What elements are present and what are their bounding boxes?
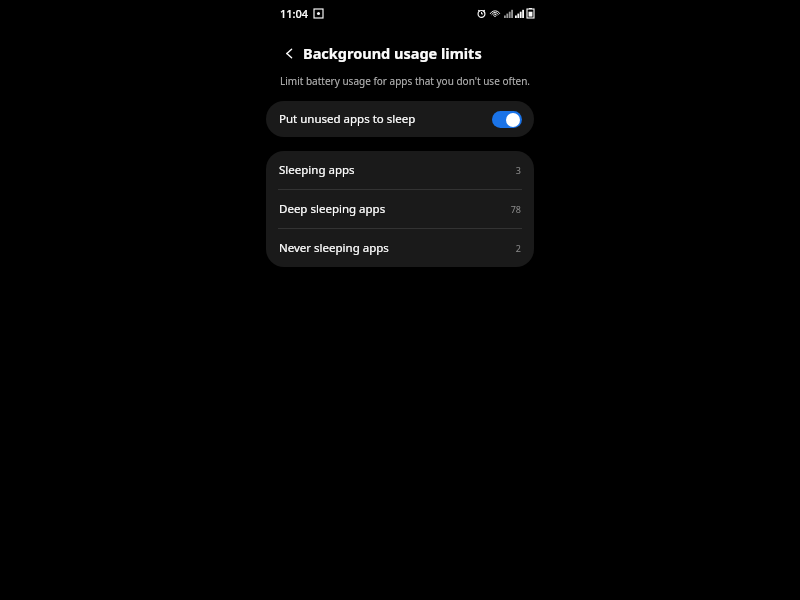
staticText: Limit battery usage for apps that you do… bbox=[280, 74, 532, 88]
button[interactable]: Put unused apps to sleep bbox=[266, 101, 534, 137]
staticText: Deep sleeping apps bbox=[279, 201, 510, 217]
staticText: Background usage limits bbox=[303, 43, 482, 63]
staticText: 2 bbox=[515, 242, 521, 254]
button[interactable]: Deep sleeping apps bbox=[266, 190, 534, 228]
button[interactable]: Put unused apps to sleep, on bbox=[492, 111, 522, 128]
button[interactable]: Sleeping apps bbox=[266, 151, 534, 189]
staticText: 78 bbox=[510, 203, 521, 215]
staticText: 11:04 bbox=[280, 6, 309, 21]
staticText: 3 bbox=[515, 164, 521, 176]
staticText: Put unused apps to sleep bbox=[279, 111, 492, 127]
staticText: Never sleeping apps bbox=[279, 240, 515, 256]
button[interactable]: Never sleeping apps bbox=[266, 229, 534, 267]
staticText: Sleeping apps bbox=[279, 162, 515, 178]
button[interactable]: Navigate up bbox=[278, 42, 300, 64]
